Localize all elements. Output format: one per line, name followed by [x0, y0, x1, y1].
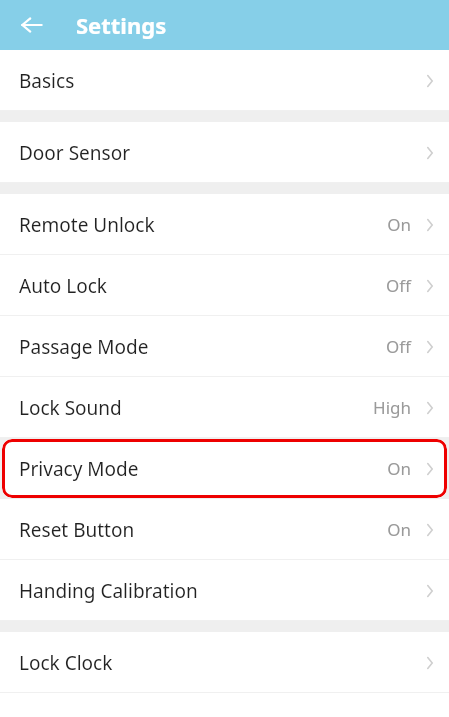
button[interactable]: Remote Unlock	[0, 194, 449, 255]
staticText: Lock Clock	[19, 650, 113, 676]
staticText: Off	[386, 274, 411, 297]
button[interactable]: Basics	[0, 50, 449, 111]
button[interactable]: Back	[12, 5, 52, 45]
staticText: Auto Lock	[19, 273, 107, 299]
staticText: On	[387, 518, 411, 541]
staticText: Off	[386, 335, 411, 358]
button[interactable]: Passage Mode	[0, 316, 449, 377]
button[interactable]: Lock Sound	[0, 377, 449, 438]
button[interactable]: Reset Button	[0, 499, 449, 560]
staticText: On	[387, 457, 411, 480]
staticText: Settings	[76, 10, 167, 40]
button[interactable]: Auto Lock	[0, 255, 449, 316]
button[interactable]: Lock Clock	[0, 632, 449, 693]
staticText: Door Sensor	[19, 140, 130, 166]
button[interactable]: Privacy Mode	[2, 439, 447, 498]
staticText: Remote Unlock	[19, 212, 155, 238]
staticText: Reset Button	[19, 517, 135, 543]
staticText: Basics	[19, 68, 75, 94]
staticText: Handing Calibration	[19, 578, 198, 604]
staticText: On	[387, 213, 411, 236]
staticText: Lock Sound	[19, 395, 122, 421]
button[interactable]: Door Sensor	[0, 122, 449, 183]
staticText: High	[373, 396, 411, 419]
button[interactable]: Handing Calibration	[0, 560, 449, 621]
staticText: Privacy Mode	[19, 456, 139, 482]
staticText: Passage Mode	[19, 334, 149, 360]
